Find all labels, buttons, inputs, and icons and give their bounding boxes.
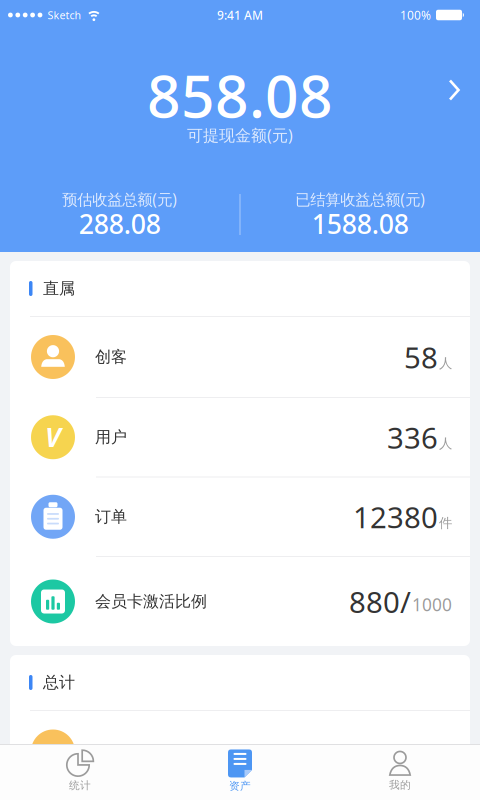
staticText: 总计 [43, 673, 75, 692]
staticText: 订单 [95, 507, 127, 527]
staticText: 会员卡激活比例 [95, 592, 207, 611]
staticText: 可提现金额(元) [187, 124, 293, 146]
button[interactable]: V [10, 398, 470, 476]
staticText: 预估收益总额(元) [62, 189, 177, 209]
staticText: 288.08 [79, 206, 161, 241]
staticText: 人 [439, 435, 452, 452]
staticText: 336 [387, 418, 438, 457]
button[interactable]: 创客 [10, 317, 470, 397]
staticText: 已结算收益总额(元) [295, 189, 425, 209]
staticText: 1000 [412, 593, 452, 616]
button[interactable]: 查看可提现金额明细 [0, 30, 480, 127]
staticText: 件 [439, 515, 452, 531]
staticText: 用户 [95, 427, 127, 447]
button[interactable]: 会员卡激活比例 [10, 557, 470, 646]
staticText: 统计 [69, 779, 91, 792]
staticText: 58 [404, 337, 438, 376]
staticText: 100% [400, 7, 431, 23]
staticText: 人 [439, 355, 452, 371]
staticText: 12380 [353, 497, 438, 536]
staticText: 我的 [389, 778, 411, 791]
staticText: 858.08 [147, 56, 333, 134]
staticText: 1588.08 [312, 206, 409, 241]
button[interactable]: 统计 [0, 745, 160, 800]
staticText: 9:41 AM [217, 7, 263, 23]
button[interactable]: 我的 [320, 745, 480, 800]
button[interactable]: 资产 [160, 745, 320, 800]
staticText: 直属 [43, 279, 75, 298]
button[interactable]: 订单 [10, 477, 470, 556]
staticText: V [45, 419, 61, 454]
staticText: 880/ [349, 582, 411, 621]
staticText: 资产 [229, 779, 251, 792]
staticText: Sketch [47, 8, 81, 22]
staticText: 创客 [95, 347, 127, 367]
